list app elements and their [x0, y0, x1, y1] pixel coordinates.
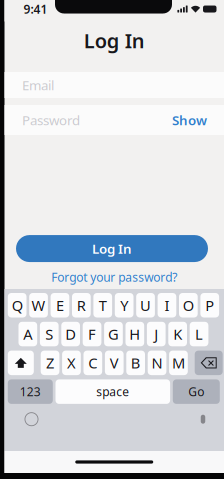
button[interactable]: T: [93, 293, 112, 317]
button[interactable]: K: [168, 322, 187, 346]
button[interactable]: F: [83, 322, 101, 346]
staticText: Show: [172, 111, 207, 129]
staticText: K: [173, 324, 182, 344]
staticText: A: [23, 324, 32, 344]
button[interactable]: Go: [173, 379, 220, 404]
staticText: Go: [188, 384, 204, 400]
staticText: Log In: [84, 27, 145, 54]
staticText: M: [172, 353, 185, 373]
button[interactable]: 123: [8, 379, 53, 404]
staticText: Email: [22, 76, 54, 94]
staticText: S: [45, 324, 53, 344]
staticText: Z: [46, 353, 54, 373]
staticText: O: [183, 295, 194, 315]
staticText: F: [88, 324, 96, 344]
button[interactable]: W: [29, 293, 48, 317]
button[interactable]: Emoji keyboard: [22, 410, 40, 428]
button[interactable]: P: [200, 293, 219, 317]
staticText: G: [108, 324, 119, 344]
button[interactable]: Dictation: [194, 410, 212, 428]
button[interactable]: D: [61, 322, 80, 346]
button[interactable]: Q: [8, 293, 26, 317]
button[interactable]: X: [62, 351, 81, 375]
button[interactable]: L: [190, 322, 208, 346]
button[interactable]: O: [179, 293, 198, 317]
staticText: E: [56, 295, 64, 315]
button[interactable]: N: [148, 351, 166, 375]
button[interactable]: Z: [41, 351, 59, 375]
staticText: H: [129, 324, 140, 344]
staticText: R: [77, 295, 86, 315]
staticText: D: [65, 324, 76, 344]
staticText: Y: [120, 295, 128, 315]
staticText: C: [88, 353, 97, 373]
button[interactable]: A: [18, 322, 37, 346]
button[interactable]: space: [55, 379, 170, 404]
button[interactable]: V: [105, 351, 124, 375]
staticText: V: [110, 353, 119, 373]
button[interactable]: S: [40, 322, 59, 346]
button[interactable]: U: [136, 293, 155, 317]
staticText: P: [205, 295, 214, 315]
staticText: X: [67, 353, 76, 373]
staticText: Q: [12, 295, 23, 315]
button[interactable]: Shift: [8, 351, 34, 375]
button[interactable]: Y: [115, 293, 133, 317]
button[interactable]: I: [158, 293, 176, 317]
staticText: Log In: [92, 240, 132, 257]
button[interactable]: M: [169, 351, 188, 375]
button[interactable]: C: [83, 351, 102, 375]
staticText: Password: [22, 111, 80, 129]
staticText: space: [96, 384, 129, 400]
staticText: 9:41: [23, 1, 47, 17]
button[interactable]: J: [147, 322, 166, 346]
staticText: U: [140, 295, 151, 315]
button[interactable]: R: [72, 293, 91, 317]
button[interactable]: H: [125, 322, 144, 346]
staticText: J: [154, 324, 158, 344]
button[interactable]: Log In: [4, 235, 224, 262]
staticText: L: [195, 324, 203, 344]
staticText: T: [99, 295, 107, 315]
button[interactable]: Forgot your password?: [45, 266, 183, 288]
staticText: Forgot your password?: [51, 269, 177, 285]
button[interactable]: Delete: [195, 351, 223, 375]
staticText: B: [131, 353, 141, 373]
staticText: I: [164, 295, 169, 315]
staticText: 123: [20, 384, 41, 400]
button[interactable]: Show: [169, 107, 210, 133]
button[interactable]: G: [104, 322, 123, 346]
staticText: N: [152, 353, 163, 373]
staticText: W: [31, 295, 45, 315]
button[interactable]: B: [126, 351, 145, 375]
button[interactable]: E: [51, 293, 69, 317]
